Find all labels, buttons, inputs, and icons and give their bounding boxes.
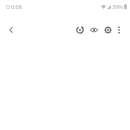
button[interactable]: Rotate [73,20,87,40]
button[interactable]: Back [1,20,21,40]
button[interactable]: Preview [87,20,101,40]
staticText: 6:08 [11,3,22,10]
button[interactable]: More options [115,20,123,40]
button[interactable]: Adjust [101,20,115,40]
staticText: 39% [112,3,123,10]
